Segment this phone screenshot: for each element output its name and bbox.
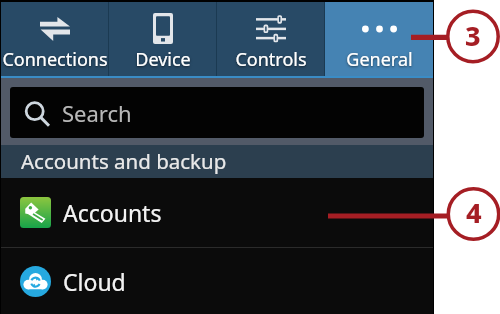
other: Connections	[40, 17, 70, 41]
staticText: Search	[62, 98, 132, 128]
staticText: Device	[135, 47, 191, 72]
button[interactable]: Callout 4	[448, 186, 500, 238]
button[interactable]: General	[325, 2, 433, 76]
staticText: Accounts	[63, 197, 162, 228]
staticText: 3	[465, 17, 481, 54]
staticText: Cloud	[63, 266, 126, 297]
staticText: 4	[466, 194, 482, 231]
staticText: Connections	[2, 47, 108, 72]
staticText: Accounts and backup	[21, 147, 227, 175]
other: Device	[153, 13, 173, 44]
button[interactable]: Device	[109, 2, 217, 76]
other: Controls	[256, 15, 286, 42]
staticText: Controls	[235, 47, 307, 72]
button[interactable]: Controls	[217, 2, 325, 76]
button[interactable]: Accounts	[1, 178, 433, 247]
button[interactable]: Connections	[1, 2, 109, 76]
button[interactable]: Callout 3	[447, 9, 499, 61]
staticText: General	[346, 47, 413, 72]
button[interactable]: Search	[10, 87, 424, 138]
button[interactable]: Cloud	[1, 248, 433, 314]
other: General	[362, 25, 397, 33]
